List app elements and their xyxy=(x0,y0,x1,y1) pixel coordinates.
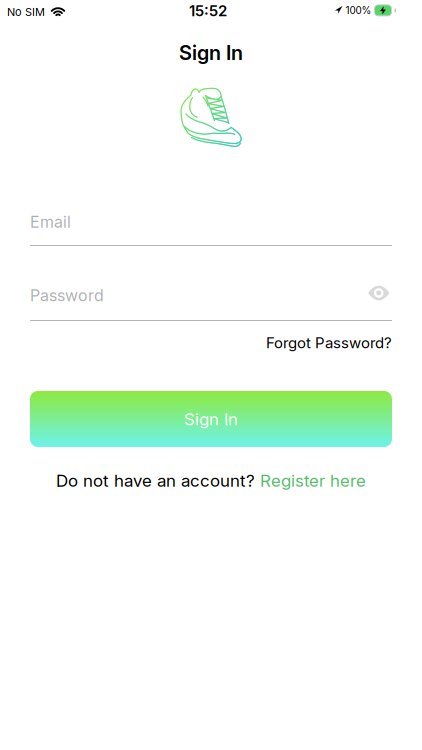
staticText: Email xyxy=(30,212,71,231)
staticText: Sign In xyxy=(184,409,238,429)
button[interactable]: Password xyxy=(30,286,392,321)
staticText: Forgot Password? xyxy=(266,334,392,352)
staticText: 15:52 xyxy=(189,2,227,20)
button[interactable]: Register here xyxy=(260,470,366,491)
staticText: No SIM xyxy=(7,5,45,18)
staticText: Do not have an account? xyxy=(56,470,255,491)
staticText: Register here xyxy=(260,470,366,491)
button[interactable]: Forgot Password? xyxy=(266,334,392,352)
staticText: Password xyxy=(30,286,104,305)
staticText: Sign In xyxy=(179,41,243,65)
button[interactable]: Email xyxy=(30,212,392,246)
button[interactable]: Sign In xyxy=(30,391,392,447)
staticText: 100% xyxy=(345,4,371,16)
